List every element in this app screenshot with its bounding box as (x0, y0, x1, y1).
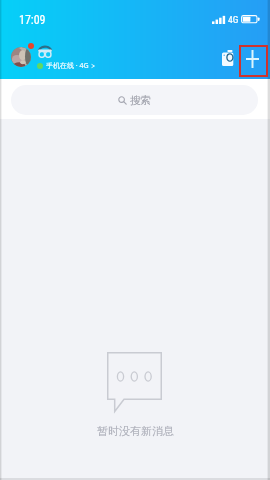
button[interactable]: 手机在线 · 4G (37, 61, 95, 71)
button[interactable]: Profile (11, 47, 31, 67)
staticText: 手机在线 · 4G (46, 61, 89, 71)
staticText: 4G (228, 14, 239, 25)
staticText: 17:09 (19, 13, 46, 27)
staticText: 搜索 (130, 94, 151, 107)
button[interactable]: Add (239, 45, 265, 73)
button[interactable]: Camera (215, 44, 239, 68)
button[interactable]: 搜索 (11, 85, 258, 115)
staticText: 暂时没有新消息 (97, 424, 174, 438)
